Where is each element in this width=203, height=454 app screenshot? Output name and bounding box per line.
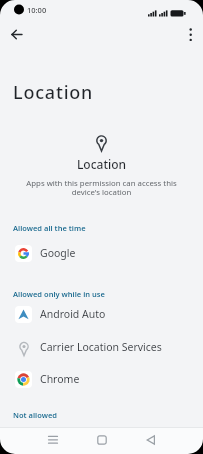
staticText: Apps with this permission can access thi… — [0, 178, 203, 197]
button[interactable]: Android Auto — [0, 298, 203, 330]
button[interactable] — [28, 428, 77, 451]
button[interactable]: Chrome — [0, 363, 203, 395]
button[interactable]: Google — [0, 237, 203, 269]
staticText: Allowed only while in use — [13, 289, 105, 299]
staticText: Location — [0, 156, 203, 172]
button[interactable] — [126, 428, 175, 451]
staticText: Android Auto — [40, 307, 106, 321]
staticText: Chrome — [40, 372, 80, 386]
staticText: Carrier Location Services — [40, 340, 162, 354]
staticText: Google — [40, 246, 76, 260]
staticText: Not allowed — [13, 410, 57, 420]
staticText: Allowed all the time — [13, 223, 86, 233]
button[interactable]: Carrier Location Services — [0, 331, 203, 363]
button[interactable] — [77, 428, 126, 451]
staticText: Location — [13, 80, 94, 105]
button[interactable] — [181, 23, 199, 45]
button[interactable] — [6, 23, 28, 45]
staticText: 10:00 — [27, 5, 47, 15]
